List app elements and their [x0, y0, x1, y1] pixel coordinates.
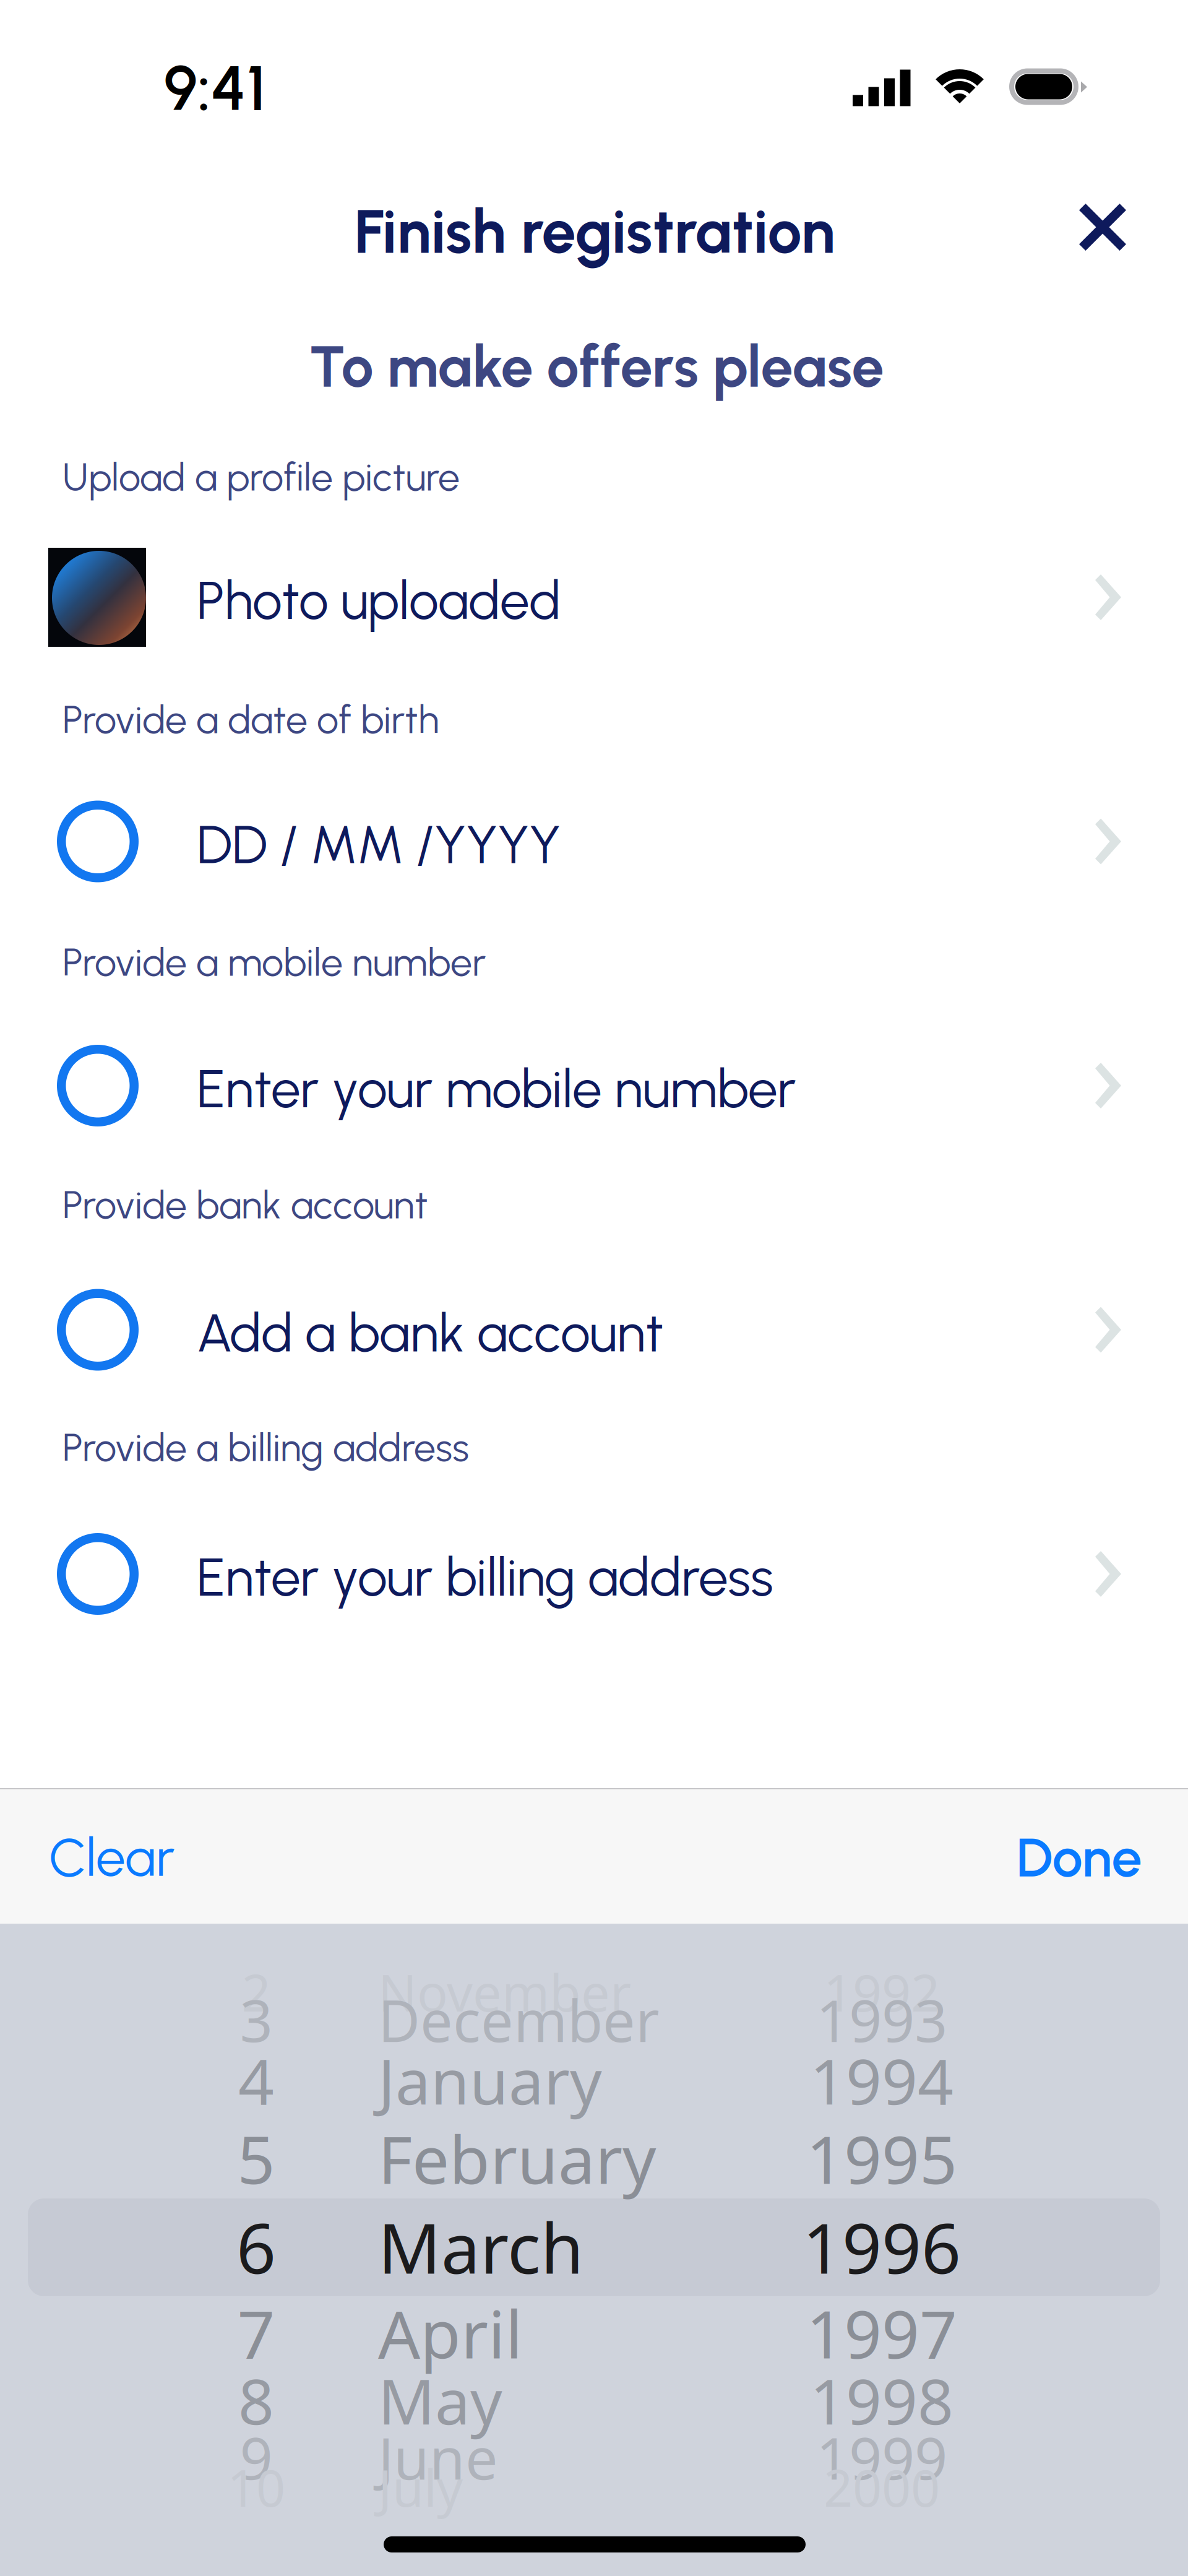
- button[interactable]: Enter your billing address: [0, 1519, 1188, 1628]
- staticText: 1998: [810, 2359, 953, 2442]
- staticText: Done: [1016, 1825, 1142, 1890]
- staticText: 9: [240, 2419, 273, 2495]
- staticText: 6: [236, 2201, 276, 2293]
- staticText: Upload a profile picture: [62, 454, 460, 500]
- button[interactable]: DD / MM /YYYY: [0, 787, 1188, 896]
- button[interactable]: Done: [1003, 1806, 1156, 1909]
- staticText: Finish registration: [354, 195, 835, 268]
- staticText: Add a bank account: [197, 1301, 663, 1365]
- staticText: 4: [238, 2039, 274, 2122]
- staticText: April: [378, 2289, 523, 2377]
- button[interactable]: Photo uploaded: [0, 543, 1188, 652]
- button[interactable]: Add a bank account: [0, 1275, 1188, 1384]
- staticText: Photo uploaded: [197, 569, 561, 632]
- button[interactable]: Clear: [35, 1807, 189, 1908]
- button[interactable]: Enter your mobile number: [0, 1031, 1188, 1140]
- staticText: January: [378, 2039, 602, 2122]
- staticText: May: [378, 2359, 502, 2442]
- staticText: 3: [240, 1981, 273, 2058]
- staticText: November: [378, 1958, 631, 2026]
- staticText: 2: [242, 1958, 271, 2026]
- staticText: 10: [227, 2453, 285, 2521]
- staticText: Provide a date of birth: [62, 696, 439, 743]
- staticText: 1992: [824, 1958, 940, 2026]
- staticText: 1993: [816, 1981, 947, 2058]
- staticText: 8: [238, 2359, 274, 2442]
- staticText: Clear: [49, 1826, 175, 1889]
- staticText: 9:41: [164, 50, 266, 126]
- staticText: 2000: [824, 2453, 940, 2521]
- staticText: June: [378, 2419, 498, 2495]
- staticText: March: [378, 2201, 583, 2293]
- staticText: 1995: [806, 2114, 957, 2202]
- staticText: December: [378, 1981, 660, 2058]
- staticText: 5: [237, 2114, 275, 2202]
- staticText: DD / MM /YYYY: [197, 813, 561, 876]
- staticText: Enter your billing address: [197, 1545, 773, 1609]
- staticText: 1999: [816, 2419, 947, 2495]
- staticText: To make offers please: [309, 332, 884, 401]
- staticText: Provide bank account: [62, 1182, 428, 1228]
- staticText: Enter your mobile number: [197, 1057, 796, 1121]
- staticText: February: [378, 2114, 656, 2202]
- staticText: Provide a mobile number: [62, 939, 486, 985]
- button[interactable]: Close: [1058, 183, 1147, 272]
- staticText: 1997: [806, 2289, 957, 2377]
- staticText: 7: [237, 2289, 275, 2377]
- staticText: 1996: [803, 2201, 961, 2293]
- staticText: Provide a billing address: [62, 1424, 469, 1471]
- staticText: 1994: [810, 2039, 953, 2122]
- staticText: July: [378, 2453, 463, 2521]
